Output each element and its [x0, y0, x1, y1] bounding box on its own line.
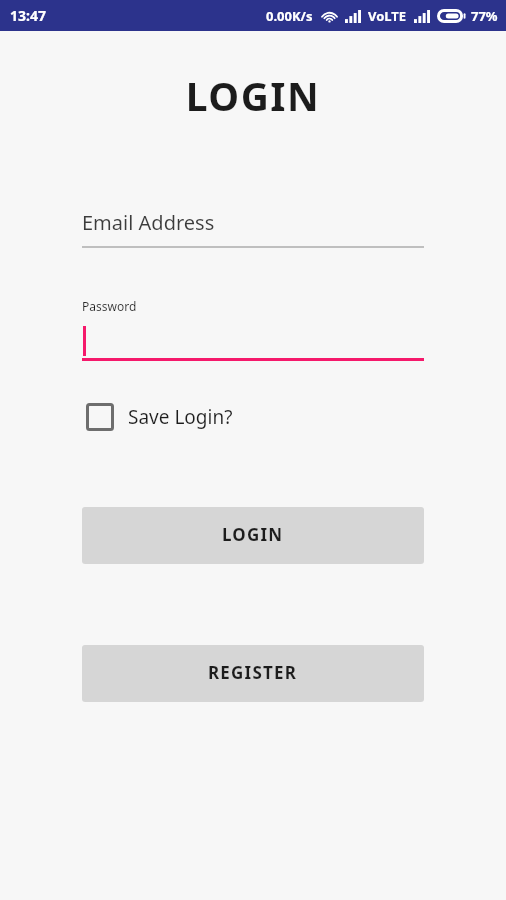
staticText: VoLTE — [368, 7, 407, 25]
staticText: Email Address — [82, 209, 215, 236]
staticText: 77% — [471, 7, 498, 25]
button[interactable]: Email Address — [82, 209, 424, 248]
staticText: Save Login? — [128, 404, 233, 430]
other: Signal strength — [414, 10, 430, 23]
other: Battery 77 percent — [437, 9, 466, 23]
staticText: Password — [82, 298, 137, 314]
other: Wi-Fi — [321, 10, 338, 23]
staticText: LOGIN — [222, 523, 284, 546]
staticText: LOGIN — [0, 69, 506, 122]
staticText: 0.00K/s — [266, 7, 313, 25]
button[interactable]: REGISTER — [82, 645, 424, 700]
staticText: 13:47 — [10, 6, 46, 25]
button[interactable]: Password — [82, 298, 424, 361]
button[interactable]: LOGIN — [82, 507, 424, 562]
other: Signal strength — [345, 10, 361, 23]
staticText: REGISTER — [208, 661, 298, 684]
button[interactable]: Save Login? — [86, 401, 241, 433]
